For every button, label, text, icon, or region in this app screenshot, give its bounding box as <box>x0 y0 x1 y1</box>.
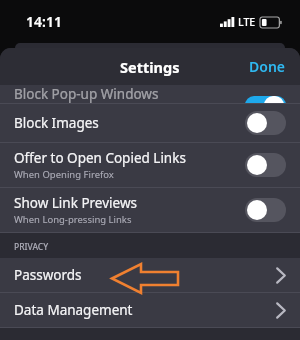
button[interactable] <box>245 198 286 222</box>
staticText: Block Pop-up Windows <box>14 85 159 103</box>
button[interactable]: Data Management <box>0 293 300 327</box>
button[interactable]: Done <box>235 51 300 82</box>
staticText: Show Link Previews <box>14 194 137 212</box>
staticText: When Long-pressing Links <box>14 213 132 226</box>
button[interactable] <box>245 111 286 135</box>
staticText: Block Images <box>14 114 99 132</box>
button[interactable] <box>245 153 286 177</box>
staticText: Settings <box>120 57 180 77</box>
staticText: 14:11 <box>26 12 62 31</box>
staticText: When Opening Firefox <box>14 168 114 181</box>
button[interactable] <box>245 96 286 114</box>
staticText: Passwords <box>14 266 276 284</box>
button[interactable]: Block Images <box>0 104 300 142</box>
button[interactable]: Offer to Open Copied Links <box>0 143 300 187</box>
button[interactable]: Block Pop-up Windows <box>0 85 300 103</box>
button[interactable]: Show Link Previews <box>0 188 300 232</box>
staticText: Offer to Open Copied Links <box>14 149 186 167</box>
staticText: PRIVACY <box>14 241 49 253</box>
staticText: LTE <box>238 15 256 29</box>
staticText: Done <box>249 57 286 76</box>
staticText: Data Management <box>14 301 276 319</box>
button[interactable]: Passwords <box>0 258 300 292</box>
